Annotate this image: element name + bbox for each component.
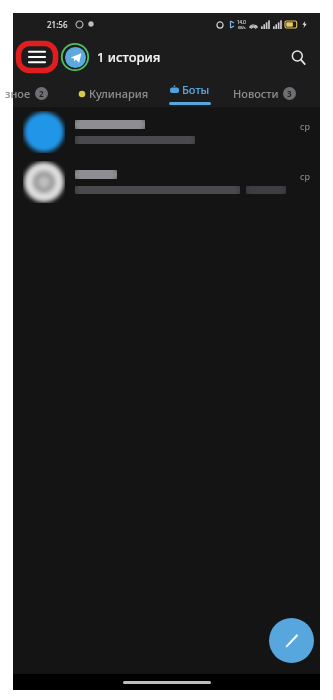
button[interactable]: Search [282,41,314,73]
staticText: 1 история [97,48,161,66]
staticText: 3 [287,88,292,99]
staticText: ср [300,120,310,132]
staticText: KB/s [238,25,246,30]
button[interactable]: Compose new message [269,618,314,663]
button[interactable]: зное [5,79,48,107]
staticText: ср [300,170,310,182]
button[interactable]: Open menu [17,42,57,72]
staticText: Новости [233,86,279,101]
button[interactable]: ср [13,157,320,207]
button[interactable]: Новости [233,79,296,107]
staticText: 14.0 [237,19,246,25]
staticText: Кулинария [89,86,149,101]
staticText: Боты [182,82,210,97]
button[interactable]: Кулинария [78,79,149,107]
button[interactable]: Боты [169,79,211,107]
button[interactable]: Story [61,43,89,71]
staticText: 2 [39,88,44,99]
staticText: 21:56 [47,19,68,30]
staticText: зное [5,86,31,101]
button[interactable]: ср [13,107,320,157]
